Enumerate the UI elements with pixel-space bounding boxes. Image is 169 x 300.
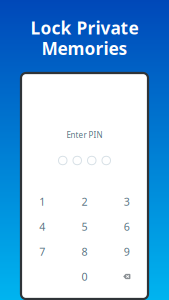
staticText: Lock Private	[30, 16, 138, 39]
staticText: Enter PIN	[66, 130, 102, 140]
button[interactable]: 7	[21, 239, 63, 264]
button[interactable]: 6	[106, 214, 148, 239]
staticText: 1	[39, 194, 45, 209]
button[interactable]: 5	[63, 214, 106, 239]
button[interactable]: 8	[63, 239, 106, 264]
button[interactable]: 4	[21, 214, 63, 239]
button[interactable]: 1	[21, 189, 63, 214]
button[interactable]: 3	[106, 189, 148, 214]
staticText: 8	[81, 244, 87, 259]
button[interactable]: 0	[63, 264, 106, 289]
staticText: 4	[39, 219, 45, 234]
staticText: 0	[81, 269, 87, 284]
staticText: 2	[81, 194, 87, 209]
staticText: 7	[39, 244, 45, 259]
button[interactable]: 9	[106, 239, 148, 264]
staticText: 3	[124, 194, 130, 209]
staticText: Memories	[41, 37, 127, 60]
button[interactable]: Delete	[106, 264, 148, 289]
staticText: 5	[81, 219, 87, 234]
button[interactable]: 2	[63, 189, 106, 214]
staticText: 6	[124, 219, 130, 234]
staticText: 9	[124, 244, 130, 259]
